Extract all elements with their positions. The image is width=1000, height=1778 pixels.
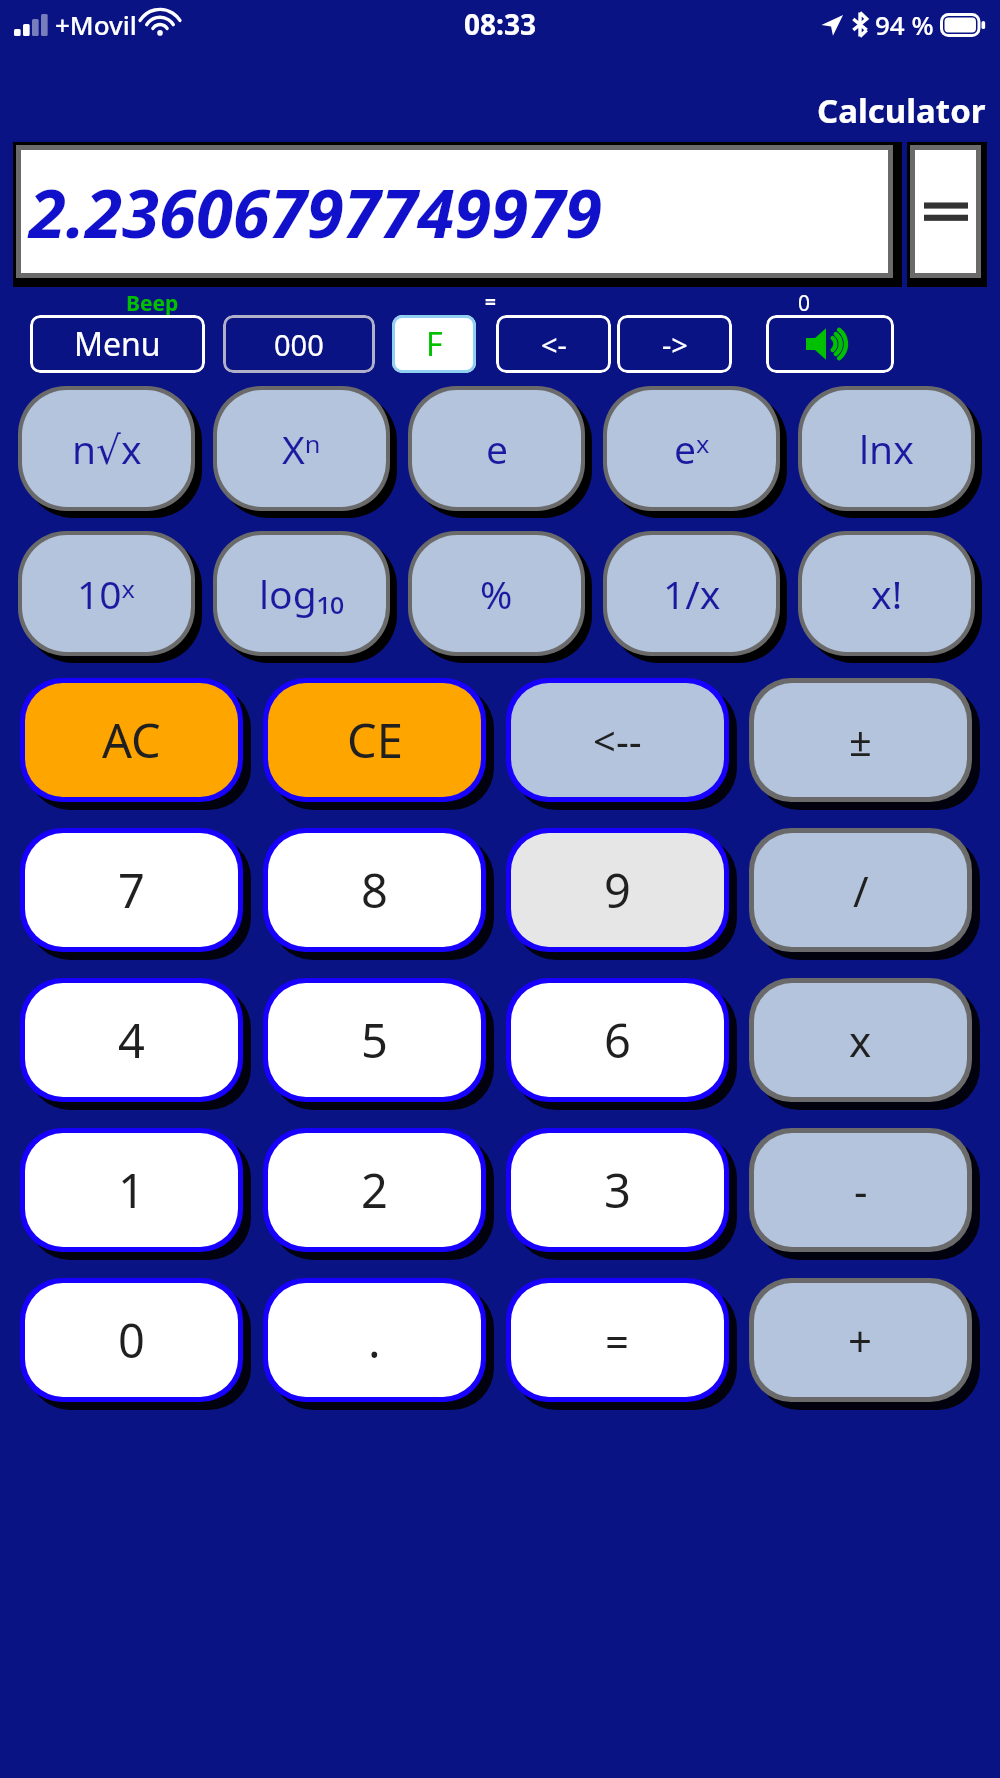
button[interactable]: 7: [25, 833, 238, 947]
staticText: 5: [361, 1008, 388, 1072]
staticText: /: [853, 862, 869, 919]
button[interactable]: 4: [25, 983, 238, 1097]
staticText: <--: [593, 713, 642, 767]
staticText: Menu: [74, 322, 161, 366]
button[interactable]: Menu: [30, 315, 205, 373]
button[interactable]: Sound: [766, 315, 894, 373]
button[interactable]: n√x: [22, 390, 191, 507]
staticText: AC: [102, 708, 161, 772]
button[interactable]: <-: [496, 315, 611, 373]
staticText: CE: [347, 708, 403, 772]
staticText: -: [854, 1162, 868, 1219]
staticText: Xⁿ: [282, 422, 321, 475]
staticText: Beep: [126, 289, 179, 315]
button[interactable]: 9: [511, 833, 724, 947]
staticText: x: [849, 1012, 872, 1069]
staticText: <-: [541, 325, 567, 364]
button[interactable]: log₁₀: [217, 535, 386, 652]
staticText: 6: [604, 1008, 631, 1072]
staticText: =: [605, 1312, 630, 1369]
staticText: log₁₀: [259, 567, 344, 620]
button[interactable]: Xⁿ: [217, 390, 386, 507]
button[interactable]: lnx: [802, 390, 971, 507]
staticText: 9: [604, 858, 631, 922]
staticText: 08:33: [464, 5, 536, 43]
button[interactable]: F: [392, 315, 476, 373]
staticText: F: [426, 322, 443, 366]
staticText: +: [848, 1312, 873, 1369]
button[interactable]: <--: [511, 683, 724, 797]
staticText: n√x: [72, 422, 142, 475]
button[interactable]: -: [754, 1133, 967, 1247]
staticText: 1/x: [663, 567, 721, 620]
staticText: +Movil: [55, 7, 137, 42]
staticText: Calculator: [817, 88, 986, 133]
button[interactable]: 2: [268, 1133, 481, 1247]
staticText: ->: [662, 325, 688, 364]
staticText: .: [368, 1308, 381, 1372]
button[interactable]: %: [412, 535, 581, 652]
button[interactable]: x!: [802, 535, 971, 652]
button[interactable]: 8: [268, 833, 481, 947]
button[interactable]: ±: [754, 683, 967, 797]
button[interactable]: /: [754, 833, 967, 947]
staticText: 000: [274, 325, 324, 364]
button[interactable]: AC: [25, 683, 238, 797]
staticText: 0: [118, 1308, 145, 1372]
staticText: =: [485, 289, 496, 315]
button[interactable]: Equals: [915, 150, 976, 273]
button[interactable]: 10ˣ: [22, 535, 191, 652]
button[interactable]: =: [511, 1283, 724, 1397]
button[interactable]: 000: [223, 315, 375, 373]
button[interactable]: ->: [617, 315, 732, 373]
button[interactable]: 6: [511, 983, 724, 1097]
staticText: 7: [118, 858, 145, 922]
staticText: 2.23606797749979: [29, 166, 602, 257]
button[interactable]: 0: [25, 1283, 238, 1397]
staticText: 4: [118, 1008, 145, 1072]
staticText: 1: [118, 1158, 145, 1222]
button[interactable]: x: [754, 983, 967, 1097]
staticText: 94 %: [875, 7, 934, 42]
button[interactable]: eˣ: [607, 390, 776, 507]
button[interactable]: CE: [268, 683, 481, 797]
button[interactable]: 1/x: [607, 535, 776, 652]
button[interactable]: 2.23606797749979: [21, 150, 888, 273]
staticText: eˣ: [674, 422, 710, 475]
button[interactable]: +: [754, 1283, 967, 1397]
staticText: e: [486, 422, 508, 475]
button[interactable]: 3: [511, 1133, 724, 1247]
staticText: 3: [604, 1158, 631, 1222]
staticText: lnx: [859, 422, 914, 475]
button[interactable]: 5: [268, 983, 481, 1097]
staticText: 0: [798, 289, 811, 315]
button[interactable]: 1: [25, 1133, 238, 1247]
staticText: %: [480, 567, 513, 620]
staticText: x!: [871, 567, 903, 620]
button[interactable]: .: [268, 1283, 481, 1397]
staticText: 2: [361, 1158, 388, 1222]
staticText: ±: [849, 713, 872, 767]
button[interactable]: e: [412, 390, 581, 507]
staticText: 8: [361, 858, 388, 922]
staticText: 10ˣ: [77, 567, 136, 620]
